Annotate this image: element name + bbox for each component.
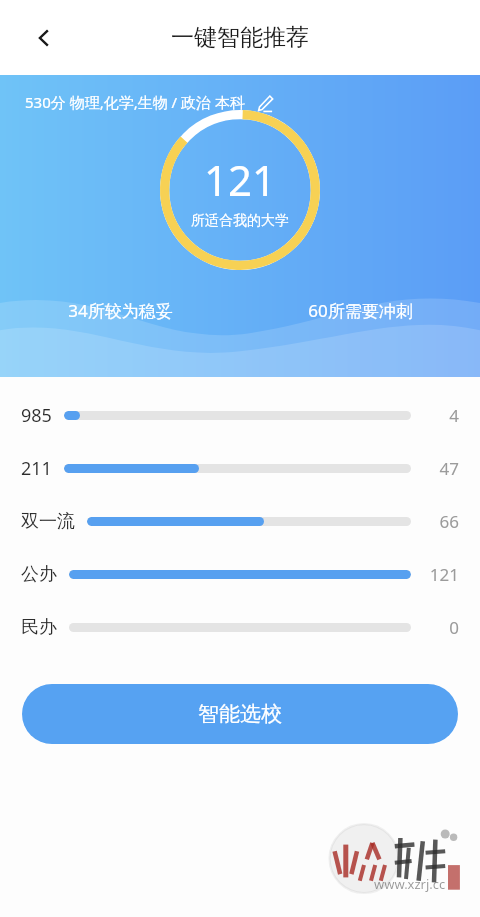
staticText: 985 xyxy=(21,403,52,428)
button[interactable]: 985 xyxy=(0,389,480,442)
button[interactable]: 211 xyxy=(0,442,480,495)
button[interactable]: 智能选校 xyxy=(22,684,458,744)
staticText: 530分 物理,化学,生物 / 政治 本科 xyxy=(25,92,245,112)
staticText: 双一流 xyxy=(21,510,75,533)
other: Edit xyxy=(255,93,274,112)
button[interactable]: 双一流 xyxy=(0,495,480,548)
button[interactable]: Back xyxy=(20,14,68,62)
staticText: 所适合我的大学 xyxy=(191,212,289,230)
button[interactable]: 34所较为稳妥 xyxy=(0,299,240,322)
staticText: 121 xyxy=(429,563,459,586)
staticText: www.xzrj.cc xyxy=(374,875,446,893)
button[interactable]: 公办 xyxy=(0,548,480,601)
staticText: 4 xyxy=(449,404,459,427)
staticText: 智能选校 xyxy=(198,701,282,727)
button[interactable]: 民办 xyxy=(0,601,480,654)
staticText: 60所需要冲刺 xyxy=(308,299,413,322)
staticText: 211 xyxy=(21,456,52,481)
staticText: 66 xyxy=(439,510,459,533)
staticText: 0 xyxy=(449,616,459,639)
staticText: 121 xyxy=(204,151,277,208)
button[interactable]: 530分 物理,化学,生物 / 政治 本科 xyxy=(25,92,274,112)
staticText: 一键智能推荐 xyxy=(171,23,309,52)
staticText: 34所较为稳妥 xyxy=(68,299,173,322)
button[interactable]: 60所需要冲刺 xyxy=(240,299,480,322)
staticText: 47 xyxy=(439,457,459,480)
staticText: 民办 xyxy=(21,616,57,639)
staticText: 公办 xyxy=(21,563,57,586)
